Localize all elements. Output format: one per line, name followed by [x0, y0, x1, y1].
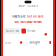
staticText: Tonight [29, 41, 40, 44]
staticText: not on sale [27, 15, 44, 18]
button[interactable]: SHOP TICKETS [18, 4, 37, 8]
staticText: NOTIFY ME [6, 29, 19, 33]
staticText: Seats [5, 41, 11, 44]
staticText: SHOP TICKETS [18, 4, 37, 8]
button[interactable]: NOTIFY ME [4, 28, 20, 34]
staticText: GET NOTIFIED WHEN [14, 20, 41, 24]
staticText: Resale [27, 29, 36, 33]
button[interactable]: Alerts [21, 28, 26, 33]
staticText: Tickets are [12, 15, 26, 18]
